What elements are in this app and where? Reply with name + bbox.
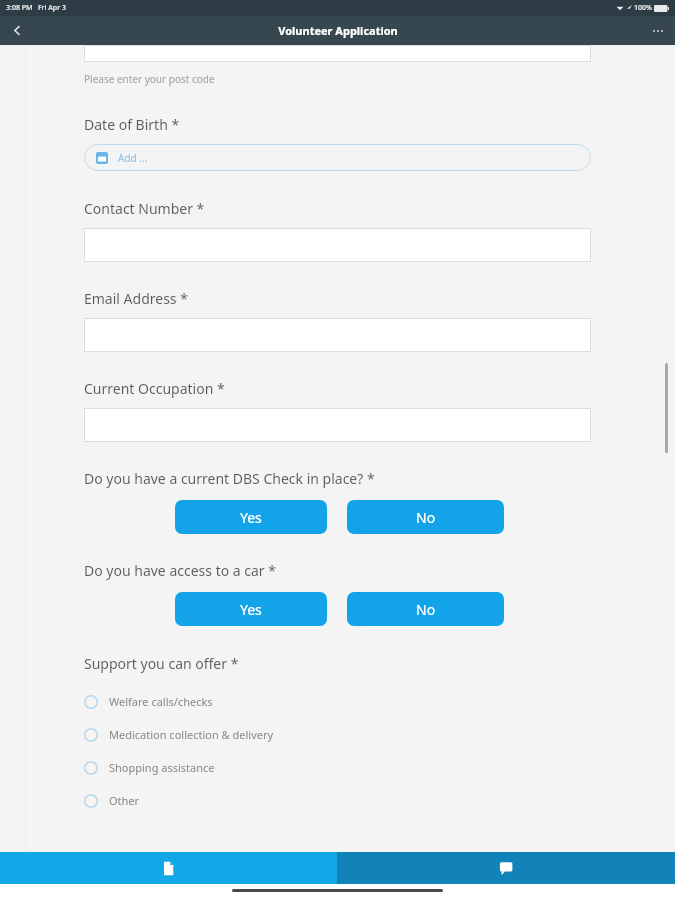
staticText: Support you can offer * xyxy=(84,654,239,673)
staticText: No xyxy=(416,600,436,619)
button[interactable]: No xyxy=(347,500,504,534)
staticText: Date of Birth * xyxy=(84,115,180,134)
staticText: 100% xyxy=(634,3,652,13)
staticText: Please enter your post code xyxy=(84,72,215,86)
staticText: Yes xyxy=(240,600,262,619)
button[interactable]: Back xyxy=(0,16,34,45)
staticText: 3:08 PM Fri Apr 3 xyxy=(6,3,66,13)
staticText: Yes xyxy=(240,508,262,527)
button[interactable]: Forms xyxy=(0,852,337,884)
staticText: Medication collection & delivery xyxy=(109,727,274,742)
button[interactable] xyxy=(84,318,591,352)
staticText: Contact Number * xyxy=(84,199,205,218)
staticText: Current Occupation * xyxy=(84,379,225,398)
button[interactable] xyxy=(84,45,591,62)
button[interactable] xyxy=(84,228,591,262)
button[interactable]: Medication collection & delivery xyxy=(84,718,591,751)
staticText: Volunteer Application xyxy=(278,23,398,38)
button[interactable]: Other xyxy=(84,784,591,817)
button[interactable]: Yes xyxy=(175,592,327,626)
button[interactable]: Messages xyxy=(337,852,675,884)
button[interactable]: No xyxy=(347,592,504,626)
button[interactable]: More options xyxy=(641,16,675,45)
staticText: Do you have a current DBS Check in place… xyxy=(84,469,375,488)
button[interactable]: Add ... xyxy=(84,144,591,171)
staticText: Do you have access to a car * xyxy=(84,561,276,580)
button[interactable]: Welfare calls/checks xyxy=(84,685,591,718)
button[interactable]: Shopping assistance xyxy=(84,751,591,784)
staticText: Email Address * xyxy=(84,289,188,308)
staticText: Other xyxy=(109,793,140,808)
staticText: No xyxy=(416,508,436,527)
staticText: Add ... xyxy=(118,151,148,165)
staticText: Welfare calls/checks xyxy=(109,694,213,709)
staticText: Shopping assistance xyxy=(109,760,215,775)
button[interactable]: Yes xyxy=(175,500,327,534)
button[interactable] xyxy=(84,408,591,442)
